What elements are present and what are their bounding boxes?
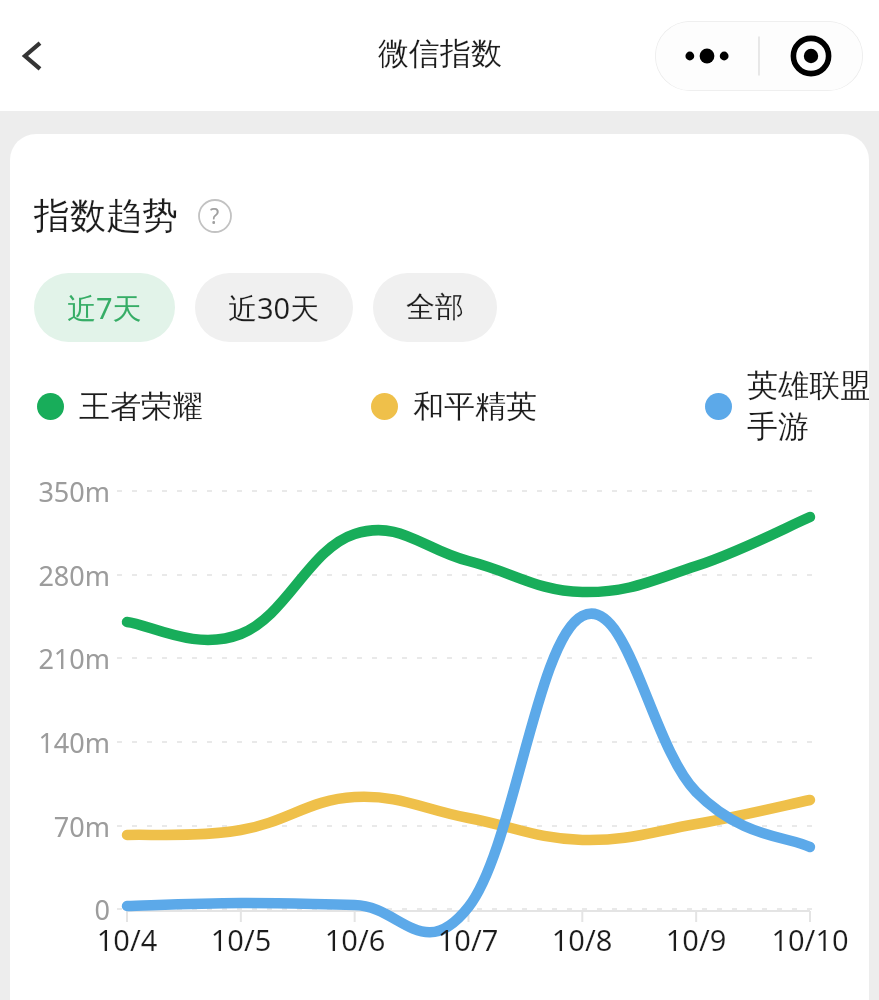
staticText: 微信指数 (378, 34, 502, 73)
staticText: 0 (18, 891, 110, 928)
staticText: 10/8 (522, 920, 642, 959)
staticText: 王者荣耀 (79, 387, 203, 426)
staticText: 10/10 (750, 920, 869, 959)
staticText: 10/6 (295, 920, 415, 959)
staticText: 10/5 (181, 920, 301, 959)
staticText: 280m (18, 557, 110, 594)
staticText: 10/9 (636, 920, 756, 959)
staticText: 近7天 (67, 288, 142, 328)
staticText: 70m (18, 808, 110, 845)
button[interactable]: Close mini program (759, 21, 863, 91)
staticText: 英雄联盟手游 (747, 366, 869, 446)
staticText: 10/4 (67, 920, 187, 959)
staticText: 210m (18, 640, 110, 677)
staticText: 140m (18, 724, 110, 761)
staticText: ? (210, 202, 220, 231)
button[interactable]: More options (655, 21, 759, 91)
button[interactable]: Help (196, 197, 234, 235)
button[interactable]: Back (4, 28, 60, 84)
staticText: 全部 (406, 289, 464, 326)
staticText: 指数趋势 (34, 193, 178, 238)
button[interactable]: 全部 (373, 273, 497, 342)
button[interactable]: 近30天 (195, 273, 353, 342)
staticText: 350m (18, 473, 110, 510)
staticText: 和平精英 (413, 387, 537, 426)
staticText: 10/7 (408, 920, 528, 959)
staticText: 近30天 (228, 288, 320, 328)
button[interactable]: 近7天 (34, 273, 175, 342)
